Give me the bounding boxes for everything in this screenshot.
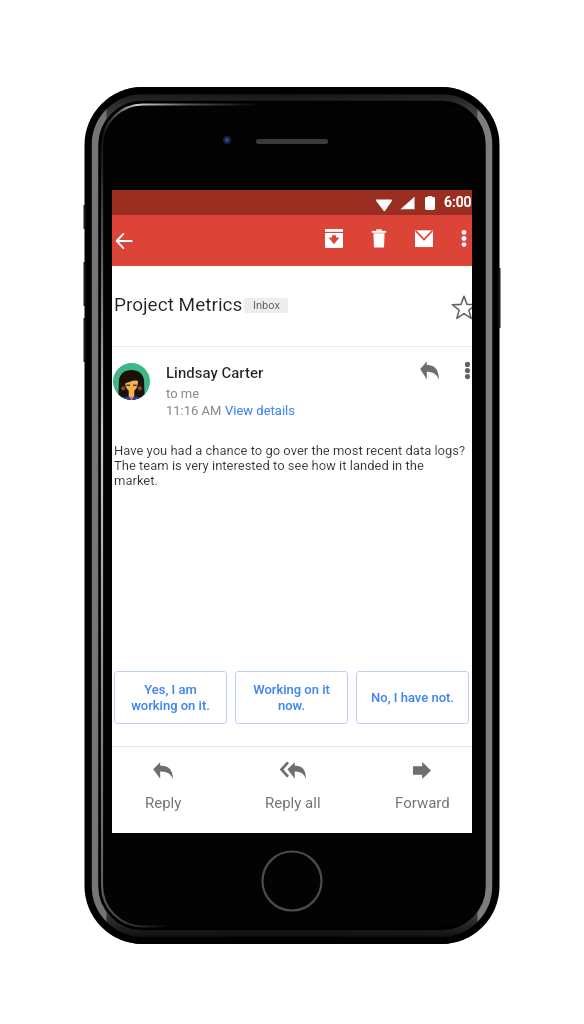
button[interactable]: More options (448, 351, 472, 389)
staticText: No, I have not. (371, 690, 454, 705)
button[interactable]: No, I have not. (356, 671, 469, 724)
button[interactable]: Reply (112, 747, 218, 833)
button[interactable]: Star (446, 290, 472, 326)
staticText: 11:16 AM (166, 403, 225, 418)
staticText: Lindsay Carter (166, 364, 264, 382)
button[interactable]: Mark as unread (405, 215, 443, 266)
staticText: Reply all (265, 794, 321, 812)
button[interactable]: Archive (315, 215, 353, 266)
staticText: 6:00 (444, 194, 472, 210)
staticText: Yes, I am working on it. (131, 682, 210, 713)
button[interactable]: More options (445, 215, 472, 266)
staticText: Have you had a chance to go over the mos… (114, 443, 470, 488)
staticText: to me (166, 386, 200, 401)
button[interactable]: Yes, I am working on it. (114, 671, 227, 724)
staticText: Reply (145, 794, 182, 812)
button[interactable]: Reply all (238, 747, 348, 833)
button[interactable]: Reply (410, 351, 448, 389)
staticText: View details (225, 403, 295, 418)
button[interactable]: Delete (360, 215, 398, 266)
staticText: Working on it now. (253, 682, 330, 713)
button[interactable]: Forward (367, 747, 472, 833)
staticText: Inbox (253, 299, 280, 312)
staticText: Forward (395, 794, 450, 812)
button[interactable]: Working on it now. (235, 671, 348, 724)
staticText: Project Metrics (114, 293, 243, 315)
button[interactable]: Back (112, 215, 144, 266)
